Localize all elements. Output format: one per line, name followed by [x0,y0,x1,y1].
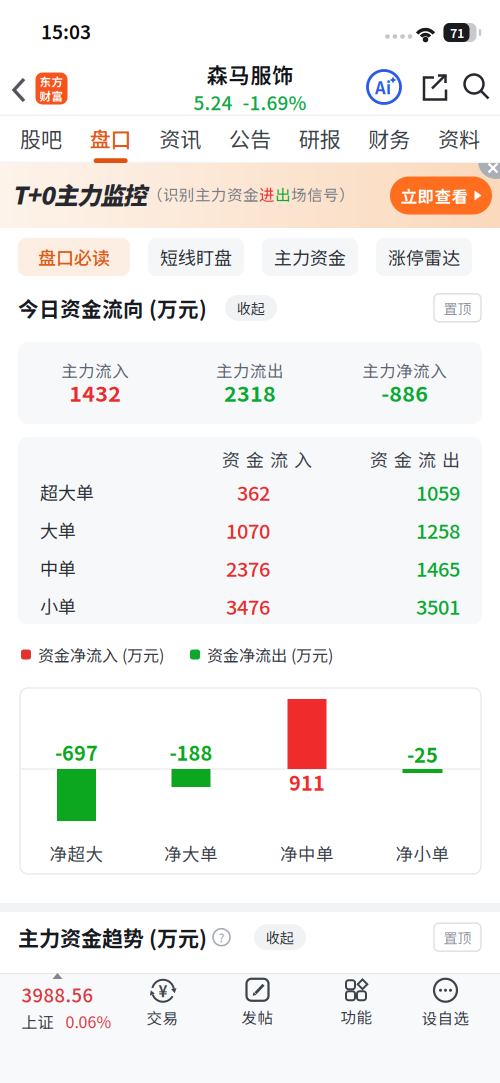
staticText: 资金流出 [370,446,460,472]
button[interactable]: 收起 [254,924,306,950]
staticText: 71 [450,23,464,42]
button[interactable]: 立即查看 [390,176,492,214]
button[interactable]: 关闭 [478,143,500,179]
staticText: 资讯 [159,123,201,153]
button[interactable]: 财务 [368,123,410,163]
staticText: 立即查看 [400,184,468,207]
staticText: -25 [407,739,438,768]
button[interactable]: Back [12,77,28,103]
staticText: 资金流入 [222,446,312,472]
staticText: 1070 [226,515,270,544]
staticText: 主力资金 [274,244,346,270]
button[interactable]: 功能 [305,978,400,1028]
staticText: 3988.56 [21,981,93,1008]
staticText: 上证 [21,1010,53,1033]
staticText: 1432 [69,377,121,408]
staticText: 小单 [40,593,76,619]
staticText: 中单 [40,555,76,581]
staticText: ¥ [158,980,167,1002]
staticText: 置顶 [443,927,471,947]
staticText: 发帖 [241,1006,273,1028]
staticText: 收起 [266,927,294,947]
staticText: 主力流入 [61,358,129,382]
staticText: 主力资金趋势 (万元) [18,922,207,952]
staticText: 3501 [416,591,460,620]
staticText: 盘口必读 [38,244,110,270]
staticText: 15:03 [41,17,91,45]
button[interactable]: 搜索 [462,72,489,99]
staticText: 东方 [39,73,63,89]
staticText: -697 [55,737,98,766]
staticText: 1465 [416,553,460,582]
button[interactable]: 股吧 [20,123,62,163]
button[interactable]: 主力资金 [262,238,358,276]
button[interactable]: Ai 助手 [367,70,400,103]
button[interactable]: 资料 [438,123,480,163]
button[interactable]: 盘口必读 [18,238,130,276]
staticText: Ai [375,75,391,99]
staticText: -1.69% [242,88,306,116]
staticText: 净中单 [280,840,334,866]
staticText: 股吧 [20,123,62,153]
staticText: 设自选 [421,1006,469,1029]
staticText: 收起 [237,298,265,318]
staticText: 公告 [229,123,271,153]
button[interactable]: 公告 [229,123,271,163]
button[interactable]: 涨停雷达 [376,238,472,276]
staticText: 净大单 [164,840,218,866]
button[interactable]: ¥ [115,977,210,1029]
button[interactable]: 东方财富 [35,72,67,104]
staticText: 净超大 [49,840,103,866]
staticText: 资金净流入 (万元) [38,643,164,666]
staticText: 5.24 [193,88,232,116]
staticText: 出 [275,183,291,205]
staticText: 1059 [416,477,460,506]
button[interactable]: 资讯 [159,123,201,163]
staticText: 主力净流入 [362,358,447,382]
button[interactable]: 盘口 [90,123,132,163]
staticText: -886 [381,377,428,408]
staticText: 森马服饰 [206,59,293,89]
staticText: 资料 [438,123,480,153]
button[interactable]: 发帖 [210,978,305,1028]
staticText: 今日资金流向 (万元) [18,293,207,323]
staticText: 911 [289,767,325,796]
staticText: 超大单 [40,479,94,505]
staticText: 功能 [340,1005,372,1028]
staticText: 置顶 [443,298,471,318]
button[interactable]: 置顶 [434,923,481,951]
staticText: 主力流出 [216,358,284,382]
staticText: -188 [169,737,212,766]
staticText: 净小单 [395,840,449,866]
button[interactable]: 置顶 [434,294,481,322]
staticText: 资金净流出 (万元) [207,643,333,666]
staticText: 1258 [416,515,460,544]
staticText: 2376 [226,553,270,582]
staticText: 2318 [224,377,276,408]
staticText: 财务 [368,123,410,153]
staticText: T+0主力监控 [12,177,147,211]
staticText: 场信号） [291,183,355,205]
button[interactable]: 研报 [299,123,341,163]
staticText: 大单 [40,517,76,543]
staticText: 进 [259,183,275,205]
staticText: 0.06% [65,1010,111,1033]
button[interactable]: 设自选 [400,977,500,1029]
button[interactable]: 收起 [225,295,277,321]
staticText: 短线盯盘 [160,244,232,270]
staticText: 交易 [146,1006,178,1029]
staticText: （识别主力资金 [147,183,259,205]
staticText: 财富 [39,87,63,104]
staticText: 研报 [299,123,341,153]
button[interactable]: 短线盯盘 [148,238,244,276]
staticText: 362 [237,477,270,506]
button[interactable]: 分享 [421,74,447,100]
staticText: ? [218,928,224,946]
staticText: 涨停雷达 [388,244,460,270]
staticText: 盘口 [90,123,132,153]
staticText: 3476 [226,591,270,620]
button[interactable]: 3988.56 [0,973,115,1033]
